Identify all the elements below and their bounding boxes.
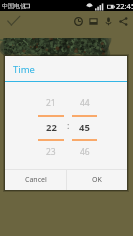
button[interactable]: Voice input: [101, 14, 116, 29]
staticText: 44: [80, 97, 90, 109]
staticText: 46: [80, 146, 90, 158]
button[interactable]: Pick 45: [72, 87, 97, 165]
button[interactable]: Clock: [71, 14, 86, 29]
button[interactable]: Done: [3, 11, 23, 31]
staticText: OK: [92, 175, 102, 185]
staticText: 22:45: [116, 1, 133, 11]
button[interactable]: Pick 22: [38, 87, 64, 165]
staticText: 45: [79, 121, 90, 134]
staticText: :: [67, 119, 70, 131]
staticText: Time: [13, 63, 35, 76]
button[interactable]: Gallery: [86, 14, 101, 29]
button[interactable]: Cancel: [5, 170, 66, 190]
button[interactable]: Share: [116, 14, 131, 29]
staticText: 22: [46, 121, 57, 134]
staticText: 23: [46, 146, 56, 158]
staticText: Cancel: [25, 175, 47, 185]
button[interactable]: OK: [67, 170, 127, 190]
staticText: 中国电信: [2, 2, 26, 10]
staticText: 21: [46, 97, 56, 109]
